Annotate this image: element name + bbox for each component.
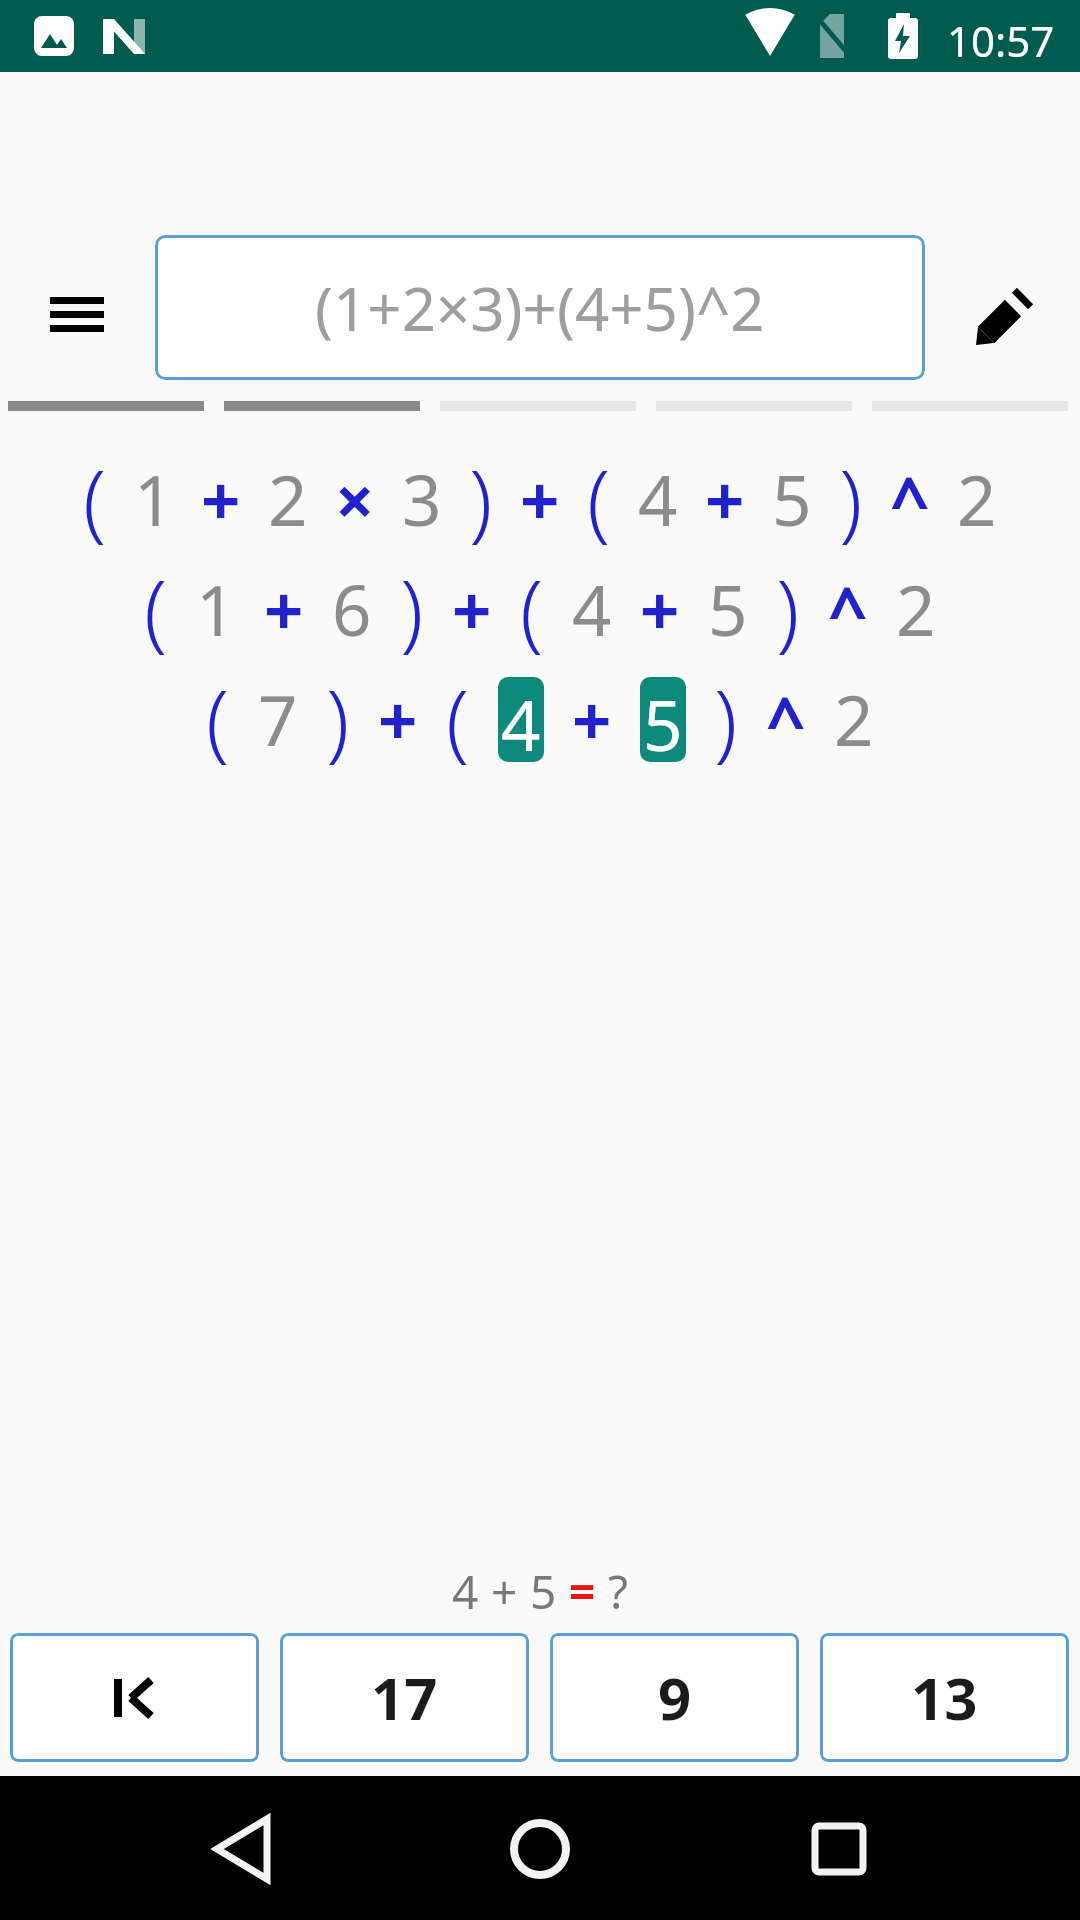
staticText: ( <box>144 552 168 666</box>
staticText: 2 <box>834 672 874 766</box>
staticText: ^ <box>828 562 868 656</box>
staticText: + <box>491 1560 518 1623</box>
staticText: × <box>335 452 375 546</box>
staticText: 9 <box>658 1658 692 1737</box>
staticText: ) <box>776 552 800 666</box>
button[interactable] <box>791 1801 887 1897</box>
staticText: 6 <box>332 562 372 656</box>
staticText: ^ <box>766 672 806 766</box>
button[interactable]: 9 <box>550 1633 799 1762</box>
staticText: + <box>264 562 304 656</box>
staticText: 5 <box>772 452 812 546</box>
staticText: (1+2×3)+(4+5)^2 <box>315 267 765 349</box>
staticText: 5 <box>708 562 748 656</box>
staticText: 1 <box>134 452 174 546</box>
staticText: ^ <box>890 452 930 546</box>
staticText: ( <box>520 552 544 666</box>
staticText: 5 <box>530 1560 557 1623</box>
button[interactable] <box>492 1801 588 1897</box>
staticText: ( <box>587 442 611 556</box>
staticText: = <box>569 1560 596 1623</box>
staticText: + <box>705 452 745 546</box>
staticText: ) <box>839 442 863 556</box>
staticText: ) <box>469 442 493 556</box>
button[interactable] <box>195 1801 291 1897</box>
staticText: 4 <box>452 1560 479 1623</box>
staticText: 4 <box>638 452 678 546</box>
staticText: 1 <box>196 562 236 656</box>
staticText: ) <box>326 662 350 776</box>
staticText: 13 <box>911 1658 978 1737</box>
staticText: + <box>640 562 680 656</box>
staticText: ( <box>446 662 470 776</box>
staticText: + <box>572 672 612 766</box>
staticText: + <box>201 452 241 546</box>
button[interactable]: 13 <box>820 1633 1069 1762</box>
staticText: + <box>378 672 418 766</box>
button[interactable] <box>10 1633 259 1762</box>
button[interactable] <box>960 275 1040 355</box>
staticText: ) <box>400 552 424 666</box>
button[interactable] <box>30 280 120 350</box>
staticText: ( <box>83 442 107 556</box>
staticText: ) <box>714 662 738 776</box>
staticText: 17 <box>371 1658 438 1737</box>
staticText: 10:57 <box>947 12 1055 69</box>
staticText: 3 <box>402 452 442 546</box>
staticText: 7 <box>258 672 298 766</box>
staticText: 4 <box>572 562 612 656</box>
staticText: 4 <box>501 677 541 762</box>
staticText: 2 <box>896 562 936 656</box>
staticText: 2 <box>268 452 308 546</box>
staticText: + <box>452 562 492 656</box>
staticText: 5 <box>643 677 683 762</box>
staticText: ? <box>608 1560 628 1623</box>
staticText: ( <box>206 662 230 776</box>
staticText: + <box>520 452 560 546</box>
button[interactable]: 17 <box>280 1633 529 1762</box>
button[interactable]: (1+2×3)+(4+5)^2 <box>155 235 925 380</box>
staticText: 2 <box>957 452 997 546</box>
